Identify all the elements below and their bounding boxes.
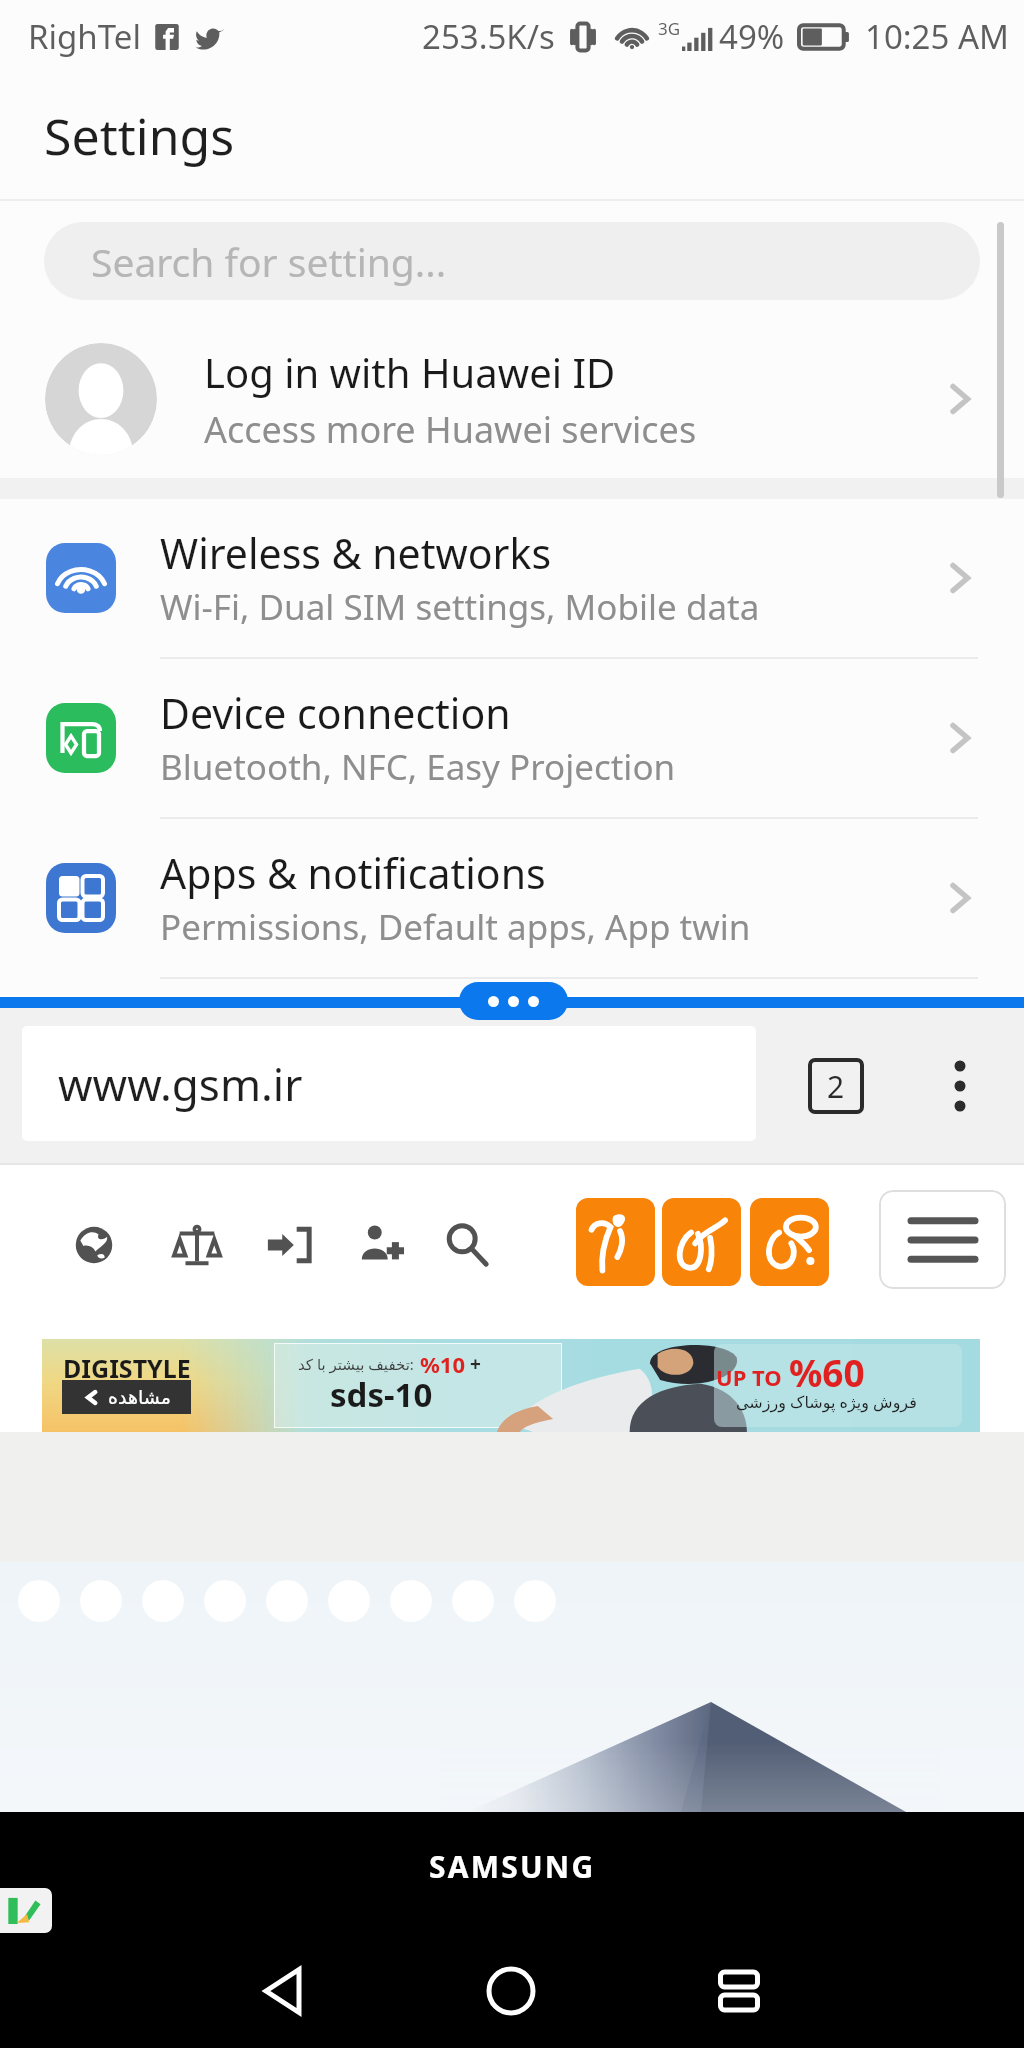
button[interactable]: Brand shortcut xyxy=(662,1198,741,1286)
button[interactable]: Brand shortcut xyxy=(750,1198,829,1286)
staticText: 10:25 AM xyxy=(865,14,1009,59)
staticText: مشاهده xyxy=(108,1386,171,1408)
button[interactable]: Compare prices xyxy=(163,1211,231,1279)
staticText: 253.5K/s xyxy=(422,14,555,59)
staticText: Permissions, Default apps, App twin xyxy=(160,903,751,951)
button[interactable]: www.gsm.ir xyxy=(22,1026,756,1141)
button[interactable]: Register xyxy=(347,1211,415,1279)
button[interactable]: Menu xyxy=(879,1190,1006,1289)
button[interactable]: Wireless & networks xyxy=(0,499,1024,657)
staticText: Settings xyxy=(44,102,235,170)
staticText: SAMSUNG xyxy=(429,1846,596,1887)
staticText: Device connection xyxy=(160,685,511,741)
staticText: Log in with Huawei ID xyxy=(204,345,616,399)
staticText: تخفیف بیشتر با کد: xyxy=(298,1354,414,1374)
button[interactable]: Split screen handle xyxy=(459,982,568,1020)
staticText: Wireless & networks xyxy=(160,525,552,581)
staticText: sds-10 xyxy=(330,1372,433,1417)
staticText: UP TO xyxy=(716,1362,782,1392)
button[interactable]: Search for setting... xyxy=(44,222,980,300)
staticText: Bluetooth, NFC, Easy Projection xyxy=(160,743,676,791)
button[interactable]: Tabs: 2 xyxy=(801,1051,871,1121)
staticText: Apps & notifications xyxy=(160,845,546,901)
staticText: %60 xyxy=(789,1347,865,1397)
staticText: RighTel xyxy=(28,14,141,59)
staticText: www.gsm.ir xyxy=(58,1054,303,1114)
staticText: Wi-Fi, Dual SIM settings, Mobile data xyxy=(160,583,760,631)
button[interactable]: Back xyxy=(244,1951,324,2031)
button[interactable]: Log in with Huawei ID xyxy=(0,320,1024,478)
button[interactable]: Search xyxy=(433,1211,501,1279)
button[interactable]: Brand shortcut xyxy=(576,1198,655,1286)
staticText: + xyxy=(470,1351,481,1377)
staticText: 3G xyxy=(658,17,681,40)
staticText: DIGISTYLE xyxy=(63,1351,191,1385)
button[interactable]: DIGISTYLE xyxy=(42,1339,980,1432)
button[interactable]: Home xyxy=(471,1951,551,2031)
button[interactable]: Globe xyxy=(60,1211,128,1279)
staticText: فروش ویژه پوشاک ورزشی xyxy=(736,1391,917,1413)
staticText: 49% xyxy=(719,14,785,59)
button[interactable]: Log in xyxy=(255,1211,323,1279)
staticText: Access more Huawei services xyxy=(204,405,697,454)
staticText: Search for setting... xyxy=(91,235,447,288)
button[interactable]: Device connection xyxy=(0,659,1024,817)
button[interactable]: Recent apps xyxy=(699,1951,779,2031)
button[interactable]: More options xyxy=(924,1050,996,1122)
staticText: %10 xyxy=(420,1349,466,1379)
staticText: 2 xyxy=(827,1066,845,1107)
button[interactable]: Apps & notifications xyxy=(0,819,1024,977)
